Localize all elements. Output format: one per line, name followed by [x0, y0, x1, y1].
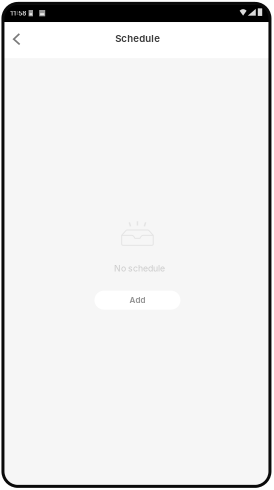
staticText: Add: [129, 295, 145, 305]
staticText: Schedule: [115, 33, 160, 44]
staticText: No schedule: [114, 263, 165, 274]
button[interactable]: Add: [94, 291, 180, 310]
button[interactable]: Back: [4, 22, 30, 58]
staticText: 11:58: [10, 9, 26, 17]
